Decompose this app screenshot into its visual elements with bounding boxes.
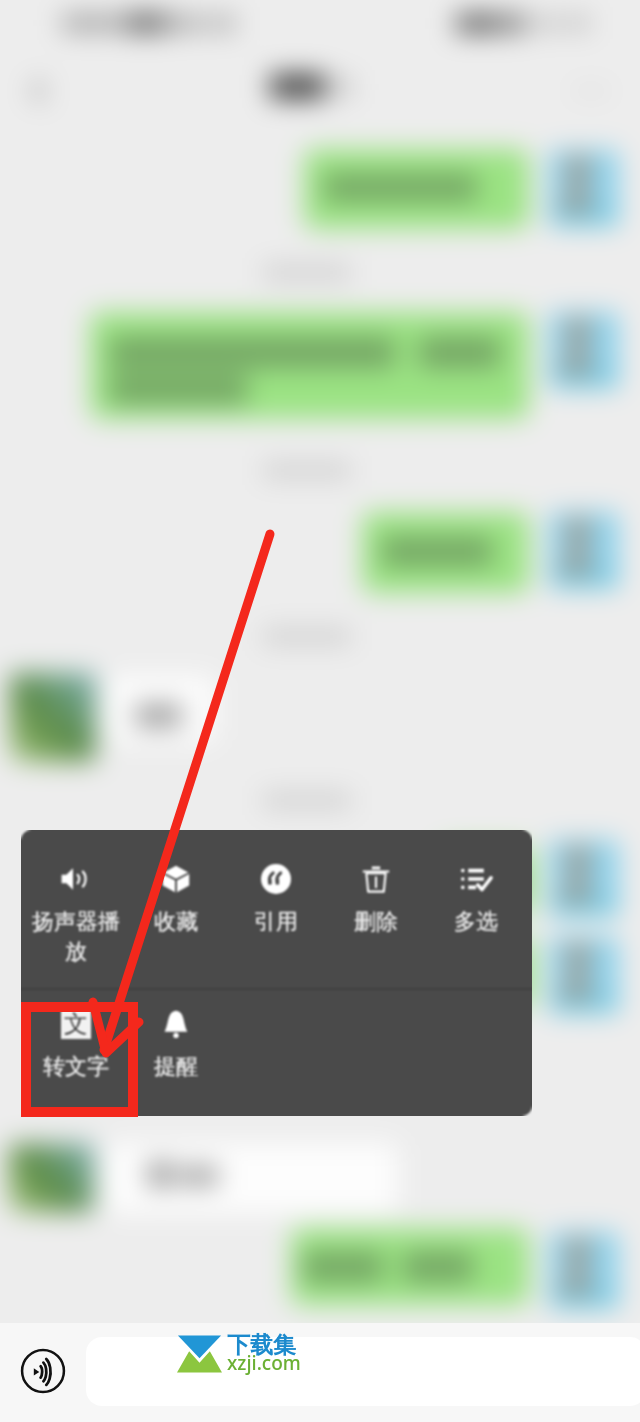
button[interactable]: 多选	[426, 830, 526, 975]
staticText: 引用	[254, 908, 298, 936]
button[interactable]: 文	[26, 975, 126, 1116]
staticText: 下载集	[227, 1331, 296, 1360]
button[interactable]: 收藏	[126, 830, 226, 975]
staticText: 文	[64, 1009, 88, 1039]
staticText: 转文字	[43, 1053, 109, 1081]
button[interactable]: Voice message	[20, 1348, 66, 1394]
staticText: 删除	[354, 908, 398, 936]
staticText: 收藏	[154, 908, 198, 936]
staticText: xzji.com	[227, 1350, 301, 1376]
button[interactable]: 扬声器播 放	[26, 830, 126, 975]
button[interactable]: 引用	[226, 830, 326, 975]
button[interactable]: 删除	[326, 830, 426, 975]
staticText: 多选	[454, 908, 498, 936]
staticText: 提醒	[154, 1053, 198, 1081]
staticText: 扬声器播 放	[32, 908, 120, 966]
button[interactable]: 提醒	[126, 975, 226, 1116]
